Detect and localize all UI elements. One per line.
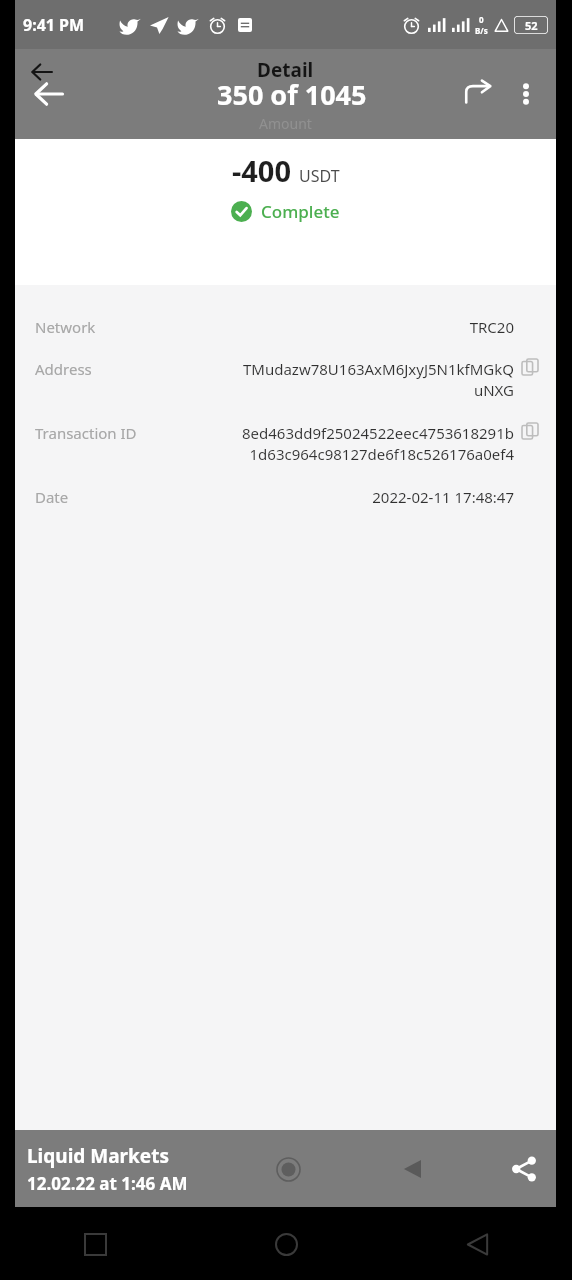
button[interactable]: Forward	[454, 70, 502, 118]
staticText: Address	[35, 359, 177, 379]
staticText: 9:41 PM	[23, 14, 85, 36]
staticText: Amount	[259, 114, 312, 133]
staticText: -400	[232, 151, 292, 190]
staticText: USDT	[299, 165, 340, 187]
button[interactable]: More options	[502, 70, 550, 118]
staticText: 350 of 1045	[217, 76, 367, 113]
button[interactable]: Previous	[388, 1145, 436, 1193]
button[interactable]: Record	[264, 1145, 312, 1193]
staticText: 8ed463dd9f25024522eec4753618291b 1d63c96…	[177, 423, 514, 465]
staticText: Liquid Markets	[27, 1143, 169, 1169]
staticText: 0	[479, 14, 484, 25]
staticText: Date	[35, 487, 177, 507]
staticText: Network	[35, 317, 177, 337]
staticText: 2022-02-11 17:48:47	[177, 487, 514, 507]
button[interactable]: Back	[453, 1220, 501, 1268]
button[interactable]: Home	[262, 1220, 310, 1268]
button[interactable]: Date	[15, 465, 556, 507]
staticText: TRC20	[177, 317, 514, 337]
staticText: TMudazw78U163AxM6JxyJ5N1kfMGkQ uNXG	[177, 359, 514, 401]
button[interactable]: Transaction ID	[15, 401, 556, 465]
staticText: 12.02.22 at 1:46 AM	[27, 1172, 188, 1195]
button[interactable]: Share	[500, 1145, 548, 1193]
staticText: Complete	[261, 200, 340, 223]
staticText: 52	[525, 18, 538, 33]
button[interactable]: Network	[15, 305, 556, 337]
staticText: B/s	[475, 25, 488, 36]
button[interactable]: Back	[25, 70, 73, 118]
staticText: Detail	[257, 57, 314, 83]
button[interactable]: Address	[15, 337, 556, 401]
button[interactable]: Recents	[71, 1220, 119, 1268]
staticText: Transaction ID	[35, 423, 177, 443]
